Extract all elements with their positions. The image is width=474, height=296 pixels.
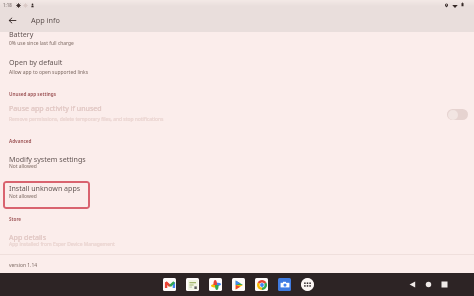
staticText: Not allowed	[9, 163, 37, 170]
staticText: 1:18	[3, 2, 12, 8]
staticText: Open by default	[9, 57, 63, 67]
staticText: Allow app to open supported links	[9, 69, 89, 76]
staticText: version 1.14	[9, 262, 38, 269]
button[interactable]: Gmail	[163, 278, 176, 291]
staticText: Battery	[9, 29, 34, 39]
button[interactable]: Photos	[209, 278, 222, 291]
staticText: App installed from Esper Device Manageme…	[9, 241, 115, 248]
button[interactable]: Recent apps	[437, 277, 451, 291]
staticText: Store	[9, 216, 22, 222]
button[interactable]: Back	[5, 13, 20, 28]
staticText: App details	[9, 232, 47, 242]
button[interactable]: Battery	[0, 29, 474, 48]
button[interactable]: Play Store	[232, 278, 245, 291]
button[interactable]: Home	[421, 277, 435, 291]
button[interactable]: Install unknown apps	[3, 181, 90, 209]
staticText: Pause app activity if unused	[9, 103, 102, 113]
button[interactable]: Docs	[186, 278, 199, 291]
staticText: Remove permissions, delete temporary fil…	[9, 116, 164, 123]
staticText: App info	[31, 15, 60, 25]
button[interactable]: Camera	[278, 278, 291, 291]
staticText: Not allowed	[9, 193, 37, 200]
staticText: Unused app settings	[9, 91, 56, 97]
button[interactable]: Back	[405, 277, 419, 291]
staticText: Install unknown apps	[9, 183, 81, 193]
staticText: Modify system settings	[9, 154, 86, 164]
staticText: Advanced	[9, 138, 32, 144]
button[interactable]: Toggle pause app activity	[447, 109, 468, 120]
button[interactable]: All apps	[301, 278, 314, 291]
button[interactable]: Chrome	[255, 278, 268, 291]
button[interactable]: Modify system settings	[0, 153, 474, 173]
staticText: 0% use since last full charge	[9, 40, 74, 47]
button[interactable]: Open by default	[0, 56, 474, 77]
